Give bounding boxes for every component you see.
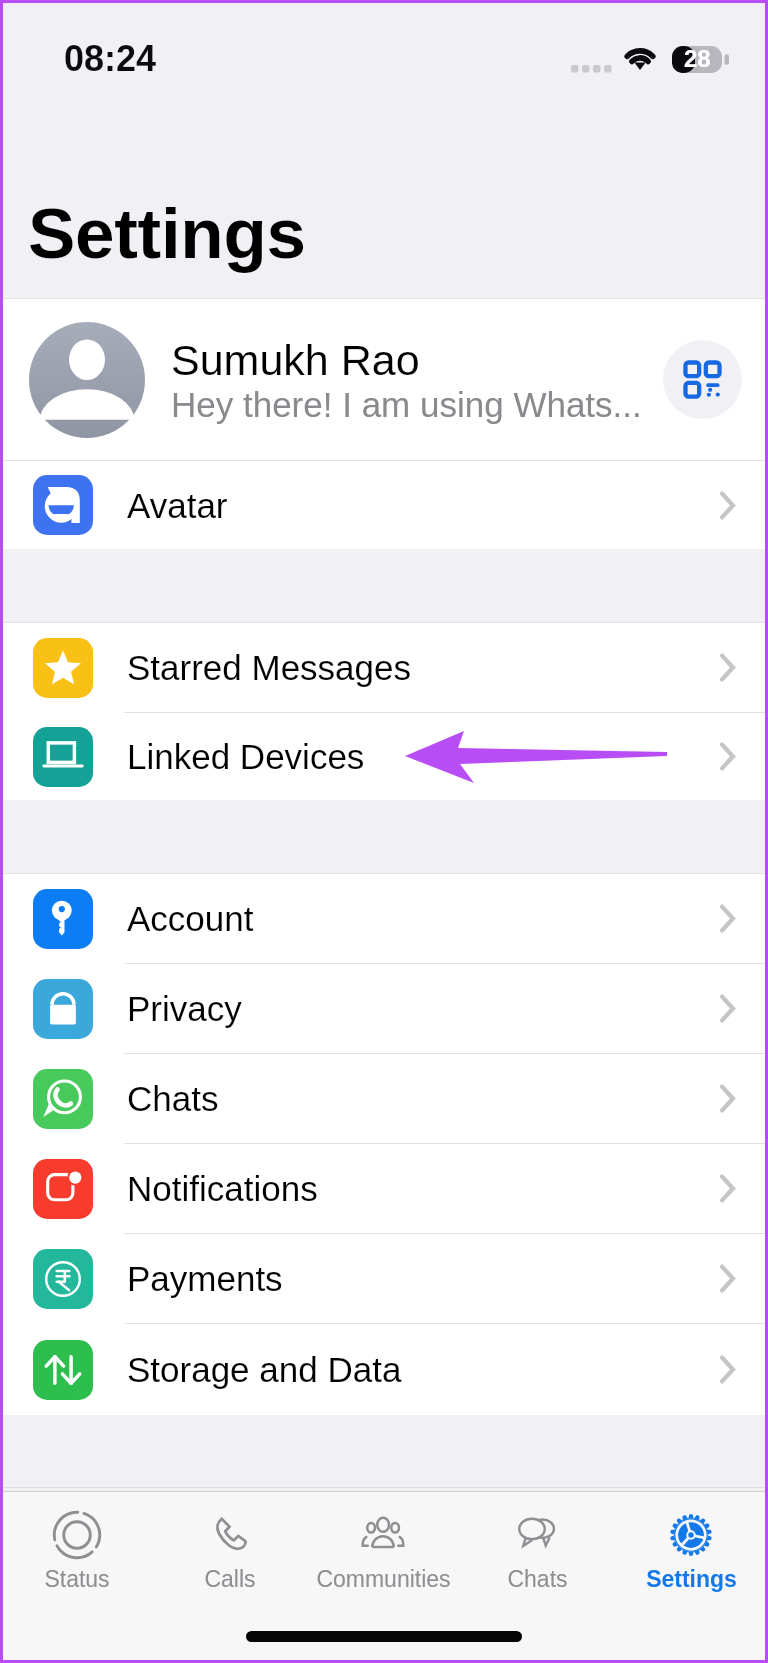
staticText: 28 xyxy=(684,45,711,72)
button[interactable]: Communities xyxy=(306,1502,460,1600)
staticText: Privacy xyxy=(127,989,720,1028)
button[interactable]: Account xyxy=(0,874,768,963)
staticText: Settings xyxy=(646,1566,737,1592)
button[interactable]: Calls xyxy=(153,1502,306,1600)
button[interactable]: Notifications xyxy=(0,1144,768,1233)
staticText: Status xyxy=(44,1566,110,1592)
staticText: Communities xyxy=(316,1566,451,1592)
staticText: Starred Messages xyxy=(127,648,720,687)
staticText: Chats xyxy=(507,1566,568,1592)
staticText: Avatar xyxy=(127,486,720,525)
staticText: Calls xyxy=(204,1566,256,1592)
staticText: Notifications xyxy=(127,1169,720,1208)
button[interactable]: Storage and Data xyxy=(0,1324,768,1415)
staticText: Account xyxy=(127,899,720,938)
staticText: Payments xyxy=(127,1259,720,1298)
staticText: Storage and Data xyxy=(127,1350,720,1389)
staticText: 08:24 xyxy=(64,38,157,78)
button[interactable]: Chats xyxy=(460,1502,614,1600)
button[interactable]: Starred Messages xyxy=(0,623,768,712)
staticText: Sumukh Rao xyxy=(171,336,420,384)
staticText: Settings xyxy=(28,194,306,273)
button[interactable]: Status xyxy=(0,1502,153,1600)
button[interactable]: Payments xyxy=(0,1234,768,1323)
staticText: Chats xyxy=(127,1079,720,1118)
button[interactable]: Settings xyxy=(614,1502,768,1600)
staticText: Hey there! I am using Whats... xyxy=(171,385,642,424)
button[interactable]: Chats xyxy=(0,1054,768,1143)
button[interactable]: Privacy xyxy=(0,964,768,1053)
button[interactable]: QR code xyxy=(663,340,742,419)
button[interactable]: Linked Devices xyxy=(0,713,768,800)
staticText: Linked Devices xyxy=(127,737,720,776)
button[interactable]: Avatar xyxy=(0,461,768,549)
button[interactable]: Sumukh Rao xyxy=(0,299,768,460)
